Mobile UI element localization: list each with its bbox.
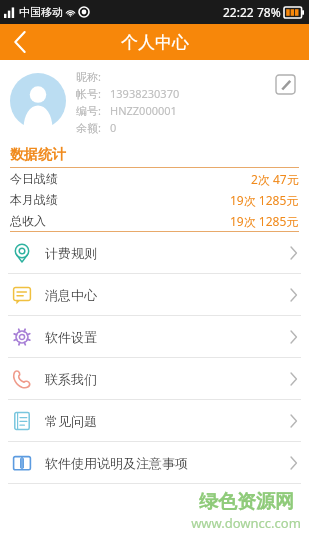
button[interactable]: 软件设置 bbox=[0, 316, 309, 358]
button[interactable]: 联系我们 bbox=[0, 358, 309, 400]
staticText: 联系我们 bbox=[45, 371, 97, 387]
staticText: 数据统计 bbox=[10, 146, 66, 164]
staticText: 帐号: bbox=[76, 86, 101, 101]
staticText: 软件设置 bbox=[45, 329, 97, 345]
staticText: 19次 1285元 bbox=[230, 213, 299, 229]
button[interactable]: 软件使用说明及注意事项 bbox=[0, 442, 309, 484]
staticText: 19次 1285元 bbox=[230, 192, 299, 208]
staticText: 编号: bbox=[76, 103, 101, 118]
staticText: 总收入 bbox=[10, 213, 46, 228]
staticText: 计费规则 bbox=[45, 245, 97, 261]
staticText: 软件使用说明及注意事项 bbox=[45, 455, 188, 471]
staticText: 中国移动 bbox=[19, 5, 63, 19]
staticText: 13938230370 bbox=[110, 86, 180, 101]
button[interactable]: 计费规则 bbox=[0, 232, 309, 274]
staticText: 绿色资源网 bbox=[199, 490, 294, 514]
staticText: 22:22 bbox=[223, 4, 254, 20]
staticText: 个人中心 bbox=[121, 32, 189, 53]
staticText: 消息中心 bbox=[45, 287, 97, 303]
button[interactable]: Edit profile bbox=[269, 68, 301, 100]
staticText: HNZZ000001 bbox=[110, 103, 177, 118]
staticText: 常见问题 bbox=[45, 413, 97, 429]
staticText: 78% bbox=[257, 4, 281, 20]
button[interactable]: Back bbox=[0, 24, 40, 60]
staticText: 今日战绩 bbox=[10, 171, 58, 186]
staticText: 余额: bbox=[76, 120, 101, 135]
staticText: 2次 47元 bbox=[251, 171, 299, 187]
staticText: 本月战绩 bbox=[10, 192, 58, 207]
staticText: 昵称: bbox=[76, 69, 101, 84]
staticText: www.downcc.com bbox=[191, 514, 301, 532]
staticText: 0 bbox=[110, 120, 117, 135]
button[interactable]: 消息中心 bbox=[0, 274, 309, 316]
button[interactable]: 常见问题 bbox=[0, 400, 309, 442]
